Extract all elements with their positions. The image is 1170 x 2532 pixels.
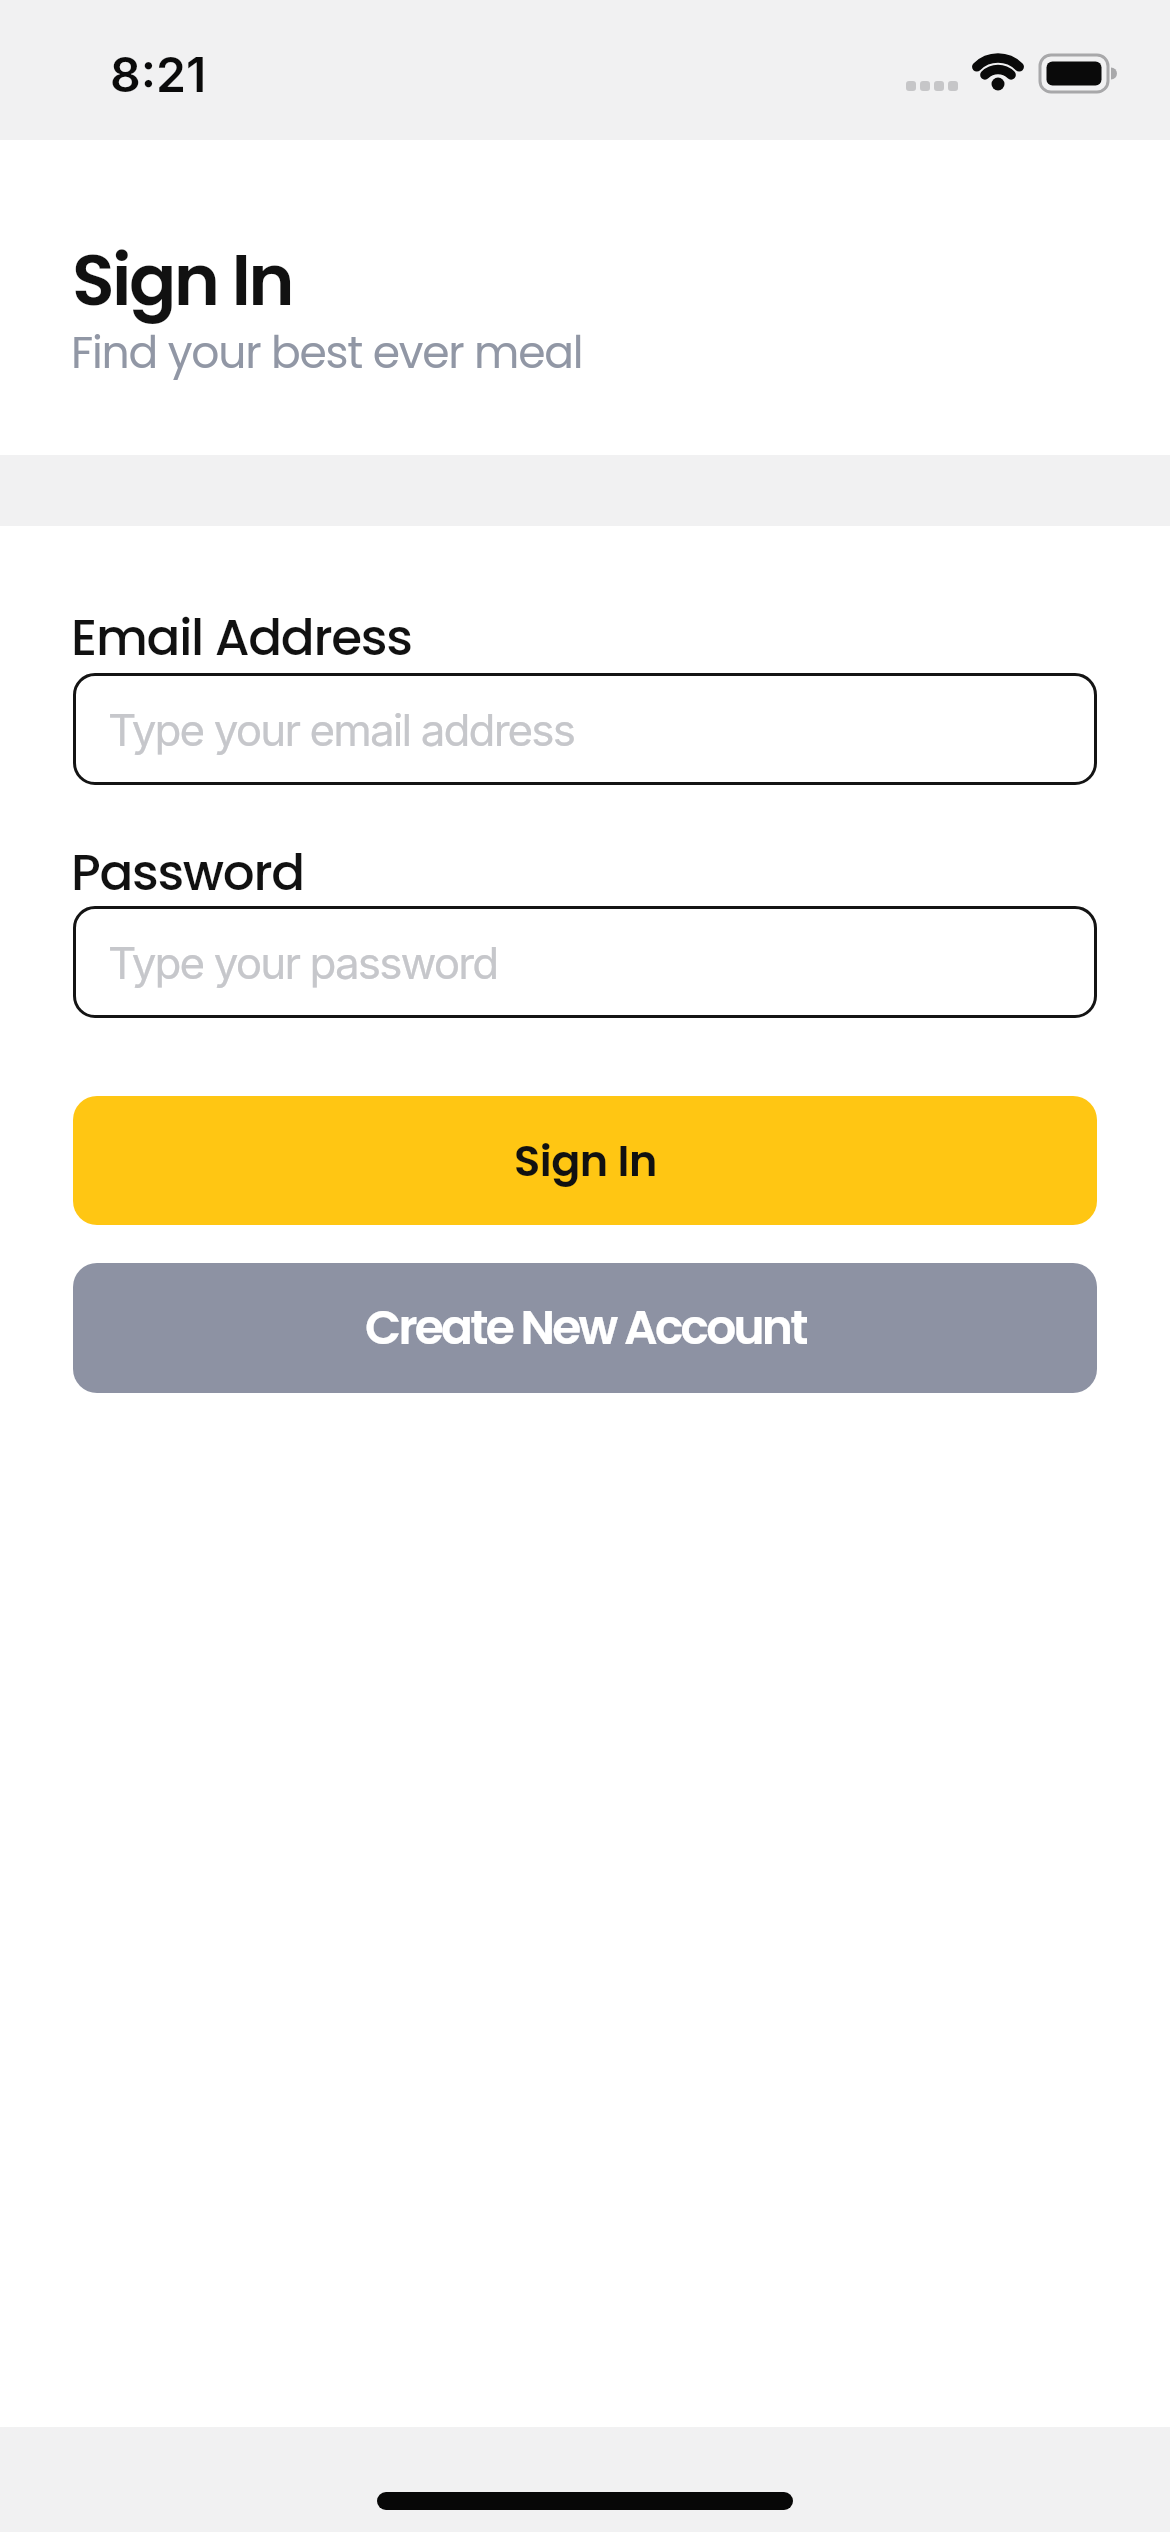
staticText: Sign In [514, 1131, 657, 1191]
staticText: Type your password [108, 936, 498, 989]
button[interactable]: Type your password [73, 906, 1097, 1018]
button[interactable]: Sign In [73, 1096, 1097, 1225]
staticText: Find your best ever meal [71, 322, 583, 384]
staticText: Type your email address [108, 703, 574, 756]
staticText: Sign In [72, 231, 293, 329]
staticText: 8:21 [110, 45, 207, 103]
button[interactable]: Type your email address [73, 673, 1097, 785]
button[interactable]: Create New Account [73, 1263, 1097, 1393]
staticText: Create New Account [365, 1295, 806, 1361]
staticText: Password [71, 838, 304, 908]
staticText: Email Address [71, 603, 412, 673]
